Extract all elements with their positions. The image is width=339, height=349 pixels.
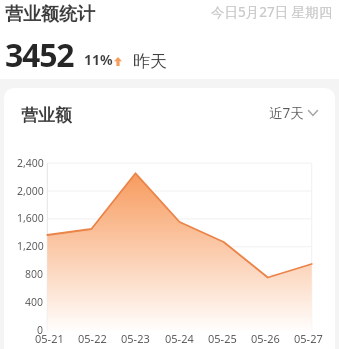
- staticText: 2,000: [17, 184, 44, 198]
- staticText: 05-27: [294, 331, 323, 346]
- staticText: 800: [25, 267, 44, 281]
- staticText: 05-25: [208, 331, 237, 346]
- staticText: 1,200: [17, 239, 44, 253]
- staticText: 05-24: [165, 331, 194, 346]
- button[interactable]: 近7天: [269, 104, 339, 122]
- staticText: 昨天: [133, 51, 167, 72]
- staticText: 11%: [84, 50, 113, 69]
- staticText: 05-26: [251, 331, 280, 346]
- staticText: 近7天: [269, 104, 304, 122]
- staticText: 400: [25, 295, 44, 309]
- staticText: 05-21: [35, 331, 64, 346]
- staticText: 营业额统计: [5, 3, 95, 26]
- staticText: 2,400: [17, 156, 44, 170]
- staticText: 0: [37, 323, 44, 337]
- staticText: 今日5月27日 星期四: [211, 3, 333, 21]
- staticText: 3452: [5, 33, 74, 77]
- staticText: 1,600: [17, 211, 44, 225]
- staticText: 05-23: [121, 331, 150, 346]
- staticText: 05-22: [78, 331, 107, 346]
- staticText: 营业额: [21, 105, 72, 126]
